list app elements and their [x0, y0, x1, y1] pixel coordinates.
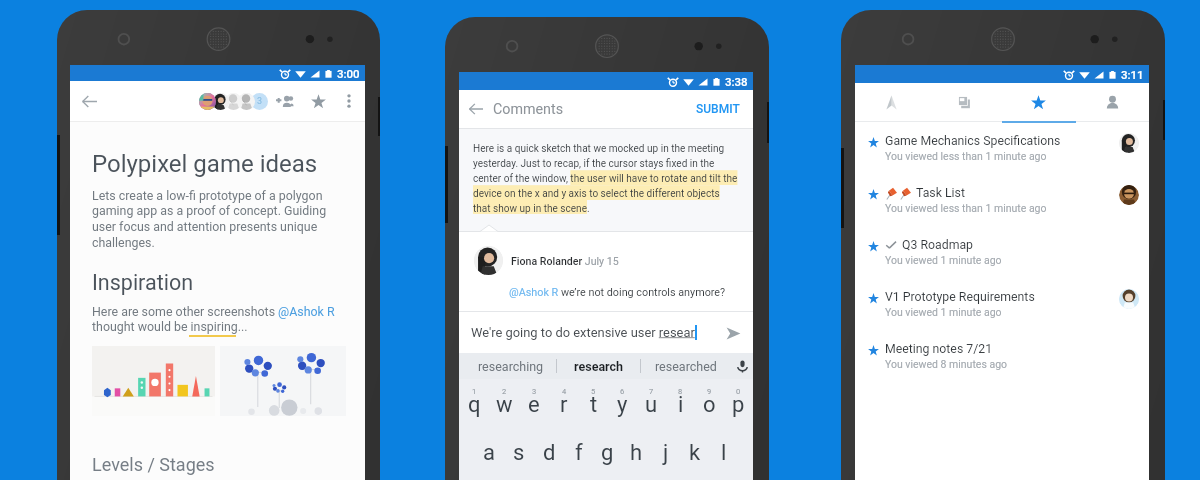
button[interactable]: Voice input: [731, 353, 753, 379]
button[interactable]: Documents: [928, 83, 1001, 121]
button[interactable]: Starred: [1001, 83, 1075, 121]
button[interactable]: 2: [489, 387, 519, 417]
staticText: h: [630, 440, 643, 466]
button[interactable]: researched: [641, 353, 731, 379]
staticText: You viewed 8 minutes ago: [885, 358, 1008, 370]
button[interactable]: s: [504, 439, 534, 467]
button[interactable]: Task List: [855, 176, 1149, 228]
button[interactable]: 8: [666, 387, 695, 417]
staticText: d: [543, 440, 556, 466]
button[interactable]: d: [534, 439, 564, 467]
button[interactable]: researching: [465, 353, 556, 379]
staticText: k: [689, 440, 701, 466]
staticText: You viewed 1 minute ago: [885, 306, 1002, 318]
button[interactable]: k: [680, 439, 709, 467]
staticText: Q3 Roadmap: [902, 238, 974, 252]
button[interactable]: Game Mechanics Specifications: [855, 124, 1149, 176]
staticText: researching: [478, 359, 544, 374]
staticText: 3:00: [337, 67, 360, 80]
button[interactable]: Send: [720, 320, 746, 346]
button[interactable]: 1: [459, 387, 489, 417]
button[interactable]: More options: [335, 87, 363, 115]
staticText: o: [703, 392, 716, 418]
staticText: SUBMIT: [696, 102, 740, 116]
button[interactable]: Back: [70, 82, 108, 120]
staticText: Inspiration: [92, 270, 194, 295]
button[interactable]: h: [622, 439, 651, 467]
staticText: j: [663, 440, 669, 466]
staticText: @Ashok R we’re not doing controls anymor…: [509, 286, 726, 299]
staticText: Polypixel game ideas: [92, 150, 318, 178]
staticText: 8: [678, 387, 683, 396]
button[interactable]: j: [651, 439, 680, 467]
button[interactable]: SUBMIT: [686, 94, 753, 124]
staticText: Game Mechanics Specifications: [885, 134, 1061, 148]
button[interactable]: Meeting notes 7/21: [855, 332, 1149, 384]
staticText: 3: [257, 96, 263, 107]
staticText: Meeting notes 7/21: [885, 342, 993, 356]
button[interactable]: l: [709, 439, 738, 467]
staticText: You viewed less than 1 minute ago: [885, 150, 1047, 162]
button[interactable]: Star: [303, 86, 333, 116]
staticText: l: [721, 440, 727, 466]
button[interactable]: Add people: [269, 86, 299, 116]
staticText: e: [528, 392, 540, 418]
staticText: 1: [472, 387, 477, 396]
staticText: We're going to do extensive user resear: [471, 325, 695, 340]
staticText: Here are some other screenshots @Ashok R…: [92, 304, 344, 334]
button[interactable]: 7: [637, 387, 666, 417]
staticText: t: [590, 392, 598, 418]
button[interactable]: f: [564, 439, 593, 467]
staticText: 4: [562, 387, 567, 396]
button[interactable]: Navigate: [855, 83, 928, 121]
staticText: You viewed less than 1 minute ago: [885, 202, 1047, 214]
staticText: a: [483, 440, 495, 466]
button[interactable]: 6: [608, 387, 637, 417]
button[interactable]: 3: [519, 387, 549, 417]
button[interactable]: 0: [724, 387, 753, 417]
staticText: r: [560, 392, 568, 418]
staticText: 5: [591, 387, 596, 396]
staticText: f: [575, 440, 583, 466]
staticText: Lets create a low-fi prototype of a poly…: [92, 188, 344, 250]
staticText: 6: [620, 387, 625, 396]
staticText: Fiona Rolander July 15: [511, 255, 619, 267]
staticText: q: [468, 392, 481, 418]
button[interactable]: V1 Prototype Requirements: [855, 280, 1149, 332]
button[interactable]: research: [557, 353, 640, 379]
button[interactable]: Q3 Roadmap: [855, 228, 1149, 280]
button[interactable]: 5: [579, 387, 608, 417]
staticText: s: [513, 440, 525, 466]
staticText: V1 Prototype Requirements: [885, 290, 1035, 304]
staticText: w: [496, 392, 513, 418]
button[interactable]: 9: [695, 387, 724, 417]
button[interactable]: a: [474, 439, 504, 467]
staticText: Here is a quick sketch that we mocked up…: [473, 143, 739, 214]
staticText: Levels / Stages: [92, 454, 215, 475]
staticText: i: [678, 392, 684, 418]
staticText: 0: [736, 387, 741, 396]
staticText: Task List: [916, 186, 965, 200]
staticText: researched: [655, 359, 717, 374]
staticText: g: [601, 440, 614, 466]
staticText: 3:38: [725, 75, 748, 88]
staticText: 9: [707, 387, 712, 396]
button[interactable]: g: [593, 439, 622, 467]
staticText: research: [574, 359, 624, 374]
button[interactable]: Screenshot 1: [92, 346, 215, 416]
staticText: 2: [502, 387, 507, 396]
staticText: 3:11: [1121, 68, 1144, 81]
staticText: 3: [532, 387, 537, 396]
staticText: 7: [649, 387, 654, 396]
staticText: Comments: [493, 101, 564, 118]
staticText: p: [732, 392, 745, 418]
button[interactable]: Collaborators: [199, 81, 269, 121]
button[interactable]: 4: [549, 387, 579, 417]
staticText: y: [617, 392, 628, 418]
button[interactable]: Screenshot 2: [220, 346, 346, 416]
staticText: u: [645, 392, 658, 418]
button[interactable]: Back: [459, 92, 493, 126]
button[interactable]: Profile: [1075, 83, 1149, 121]
staticText: You viewed 1 minute ago: [885, 254, 1002, 266]
